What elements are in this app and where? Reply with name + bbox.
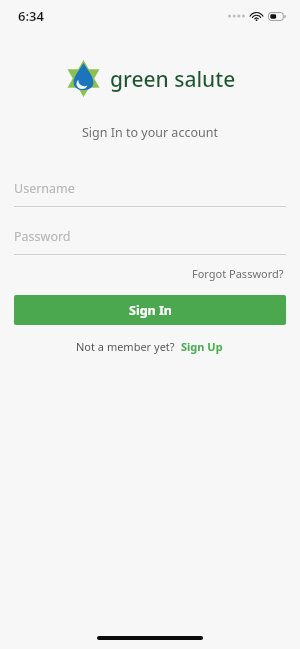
staticText: Sign In <box>129 302 172 319</box>
staticText: Sign Up <box>181 339 223 354</box>
button[interactable]: Password <box>14 227 286 255</box>
staticText: Not a member yet? <box>76 339 175 354</box>
button[interactable]: Sign Up <box>179 337 225 356</box>
button[interactable]: Username <box>14 179 286 207</box>
staticText: 6:34 <box>18 7 44 25</box>
staticText: Sign In to your account <box>82 124 218 141</box>
button[interactable]: Sign In <box>14 295 286 325</box>
staticText: Forgot Password? <box>192 266 284 281</box>
button[interactable]: Forgot Password? <box>190 263 286 284</box>
staticText: Password <box>14 228 71 245</box>
staticText: green salute <box>110 65 236 94</box>
staticText: Username <box>14 180 75 197</box>
